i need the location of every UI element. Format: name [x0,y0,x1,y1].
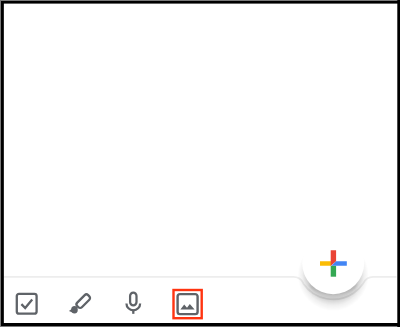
button[interactable]: New note [304,233,363,292]
button[interactable]: New note with image [172,288,203,319]
button[interactable]: New drawing [67,291,93,317]
button[interactable]: New voice note [120,291,146,317]
button[interactable]: New list [14,291,40,317]
